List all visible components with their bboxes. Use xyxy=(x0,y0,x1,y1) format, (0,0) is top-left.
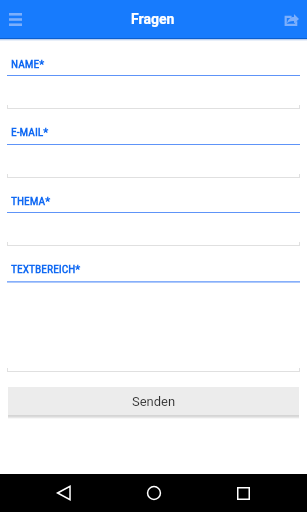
button[interactable]: Senden xyxy=(8,387,299,415)
button[interactable]: Back xyxy=(46,474,82,512)
staticText: E-MAIL* xyxy=(11,125,49,138)
button[interactable]: Recent apps xyxy=(225,474,261,512)
staticText: Fragen xyxy=(131,11,175,27)
staticText: Senden xyxy=(132,394,176,409)
button[interactable]: Open navigation menu xyxy=(0,4,30,34)
button[interactable]: Home xyxy=(136,474,172,512)
staticText: THEMA* xyxy=(11,194,51,207)
button[interactable]: Share xyxy=(277,4,307,34)
staticText: NAME* xyxy=(11,57,45,70)
staticText: TEXTBEREICH* xyxy=(11,262,81,275)
